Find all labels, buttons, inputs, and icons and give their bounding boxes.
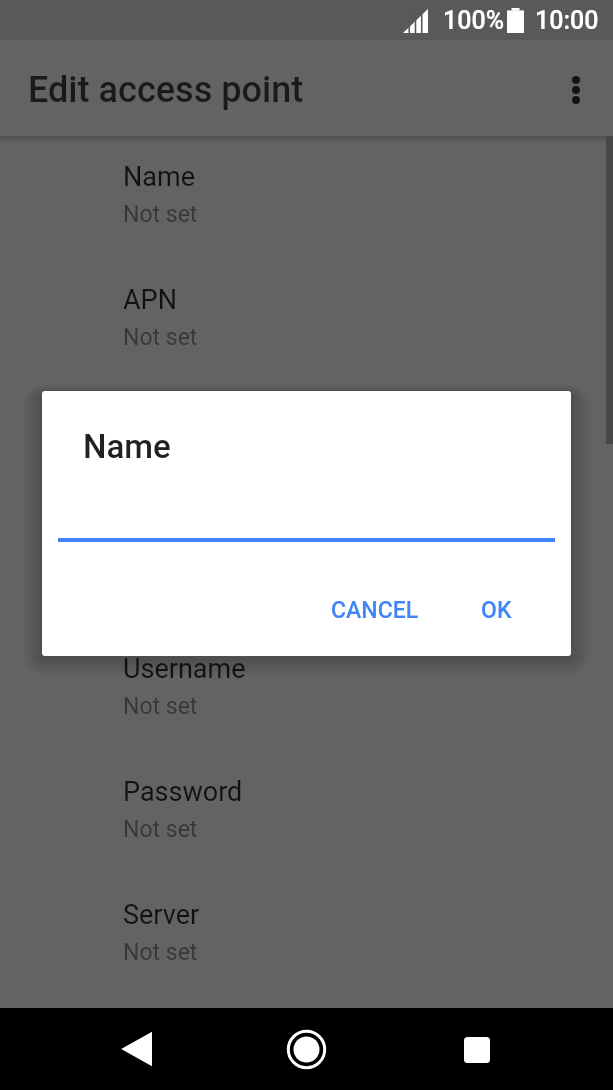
staticText: Port	[123, 530, 174, 562]
button[interactable]: CANCEL	[314, 583, 436, 638]
staticText: Server	[123, 899, 200, 931]
staticText: Not set	[123, 816, 198, 843]
button[interactable]: Port	[0, 505, 613, 628]
staticText: Name	[123, 161, 195, 193]
staticText: CANCEL	[331, 597, 419, 624]
staticText: Not set	[123, 693, 198, 720]
staticText: 10:00	[535, 6, 599, 35]
staticText: 100%	[443, 6, 504, 35]
button[interactable]: Back	[95, 1008, 180, 1090]
staticText: Name	[83, 427, 171, 466]
button[interactable]: Recents	[434, 1008, 519, 1090]
button[interactable]: Proxy	[0, 382, 613, 505]
button[interactable]: Password	[0, 751, 613, 874]
staticText: Edit access point	[28, 69, 304, 111]
button[interactable]: Username	[0, 628, 613, 751]
button[interactable]: Name	[0, 136, 613, 259]
staticText: APN	[123, 284, 177, 316]
staticText: Not set	[123, 201, 198, 228]
staticText: Not set	[123, 447, 198, 474]
staticText: Username	[123, 653, 246, 685]
staticText: Password	[123, 776, 243, 808]
button[interactable]: Server	[0, 874, 613, 997]
button[interactable]: OK	[464, 583, 529, 638]
button[interactable]: More options	[545, 59, 607, 121]
staticText: OK	[481, 597, 512, 624]
staticText: Not set	[123, 324, 198, 351]
button[interactable]: APN	[0, 259, 613, 382]
button[interactable]: Home	[264, 1008, 349, 1090]
staticText: Not set	[123, 939, 198, 966]
